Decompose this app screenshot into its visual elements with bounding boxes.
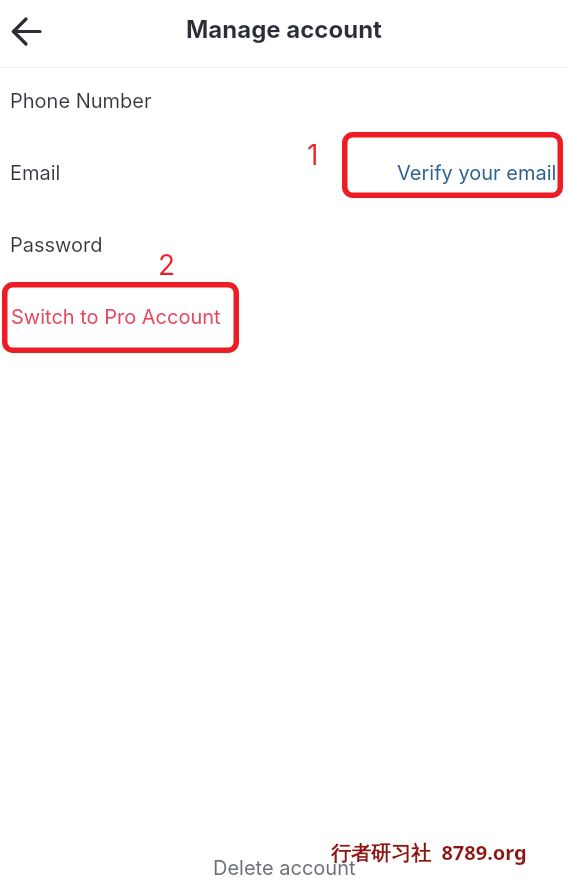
button[interactable]: Password <box>0 223 568 267</box>
staticText: Verify your email <box>397 161 557 185</box>
button[interactable]: Back <box>7 10 47 50</box>
staticText: 2 <box>158 248 176 282</box>
staticText: Password <box>10 233 103 257</box>
staticText: Delete account <box>213 856 356 880</box>
button[interactable]: Phone Number <box>0 79 568 123</box>
staticText: Email <box>10 161 61 185</box>
button[interactable]: Email <box>0 151 568 195</box>
staticText: Phone Number <box>10 89 152 113</box>
staticText: 1 <box>307 138 319 172</box>
staticText: 行者研习社 8789.org <box>331 839 527 866</box>
staticText: Switch to Pro Account <box>11 305 221 329</box>
button[interactable]: Delete account <box>0 846 568 890</box>
button[interactable]: Switch to Pro Account <box>0 295 568 339</box>
staticText: Manage account <box>186 15 382 44</box>
